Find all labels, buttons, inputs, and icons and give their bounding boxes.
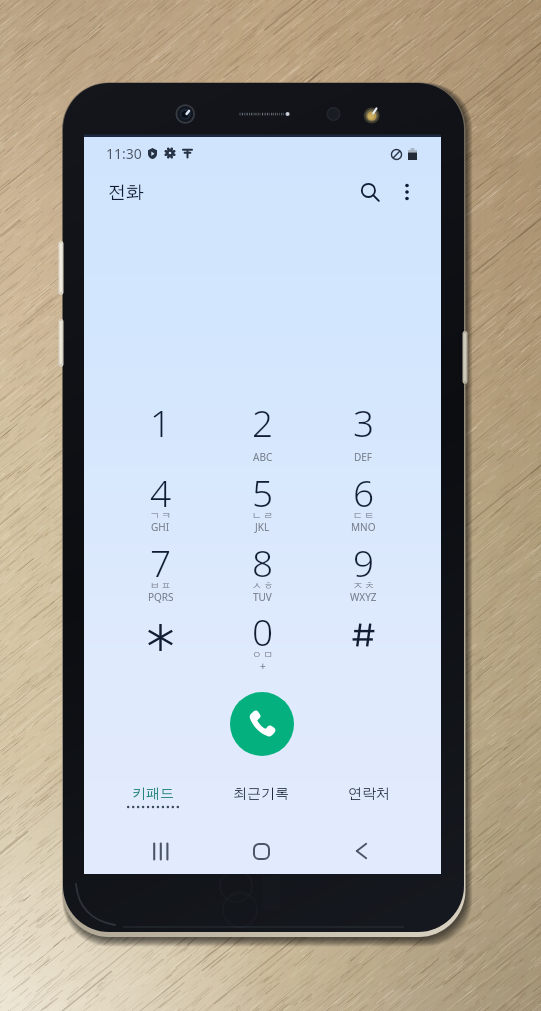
button[interactable]: Home [219, 831, 303, 871]
button[interactable]: Back [319, 831, 403, 871]
button[interactable]: 6 [313, 465, 414, 534]
button[interactable]: 연락처 [311, 773, 427, 811]
staticText: 6 [353, 467, 375, 517]
staticText: ㅂㅍ [149, 579, 172, 592]
button[interactable]: 9 [313, 535, 414, 604]
button[interactable] [313, 604, 414, 673]
staticText: 키패드 [132, 785, 174, 803]
staticText: 0 [252, 606, 274, 656]
staticText: + [260, 659, 266, 673]
button[interactable]: Search [348, 170, 392, 214]
button[interactable]: More options [387, 172, 427, 212]
staticText: 전화 [108, 181, 144, 204]
staticText: ㅅㅎ [251, 579, 274, 592]
staticText: 2 [252, 397, 274, 447]
staticText: 1 [150, 397, 172, 447]
button[interactable]: 0 [212, 604, 313, 673]
staticText: 연락처 [348, 785, 390, 803]
staticText: ㄱㅋ [149, 509, 172, 522]
staticText: 8 [252, 537, 274, 587]
staticText: DEF [354, 450, 373, 464]
button[interactable]: 키패드 [95, 773, 211, 811]
button[interactable]: 최근기록 [203, 773, 319, 811]
staticText: MNO [351, 520, 376, 534]
staticText: 최근기록 [233, 785, 289, 803]
button[interactable]: 2 [212, 395, 313, 464]
button[interactable]: 7 [110, 535, 211, 604]
button[interactable]: 1 [110, 395, 211, 464]
staticText: 5 [252, 467, 274, 517]
staticText: 11:30 [106, 144, 142, 162]
staticText: 7 [150, 537, 172, 587]
button[interactable]: Recents [119, 831, 203, 871]
staticText: 9 [353, 537, 375, 587]
staticText: JKL [255, 520, 270, 534]
button[interactable]: Call [230, 692, 294, 756]
staticText: GHI [151, 520, 170, 534]
button[interactable]: 3 [313, 395, 414, 464]
staticText: ㄷㅌ [352, 509, 375, 522]
staticText: ㅇㅁ [251, 648, 274, 661]
staticText: TUV [253, 590, 272, 604]
button[interactable]: 5 [212, 465, 313, 534]
staticText: 4 [150, 467, 172, 517]
staticText: ABC [253, 450, 273, 464]
button[interactable]: 4 [110, 465, 211, 534]
staticText: PQRS [148, 590, 174, 604]
button[interactable] [110, 604, 211, 673]
staticText: 3 [353, 397, 375, 447]
staticText: WXYZ [350, 590, 377, 604]
button[interactable]: 8 [212, 535, 313, 604]
staticText: ㄴㄹ [251, 509, 274, 522]
staticText: ㅈㅊ [352, 579, 375, 592]
